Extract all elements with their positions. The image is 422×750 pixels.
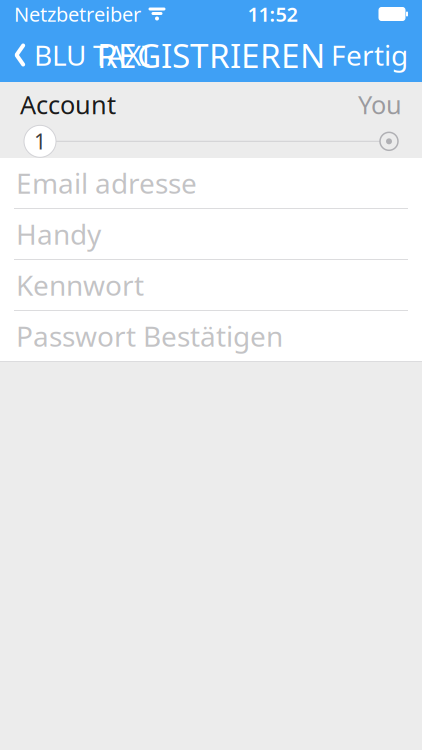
staticText: Account	[20, 88, 116, 121]
button[interactable]: Handy	[0, 209, 422, 259]
button[interactable]	[378, 130, 400, 152]
staticText: 11:52	[247, 1, 297, 27]
staticText: 1	[34, 127, 46, 155]
staticText: Fertig	[331, 36, 408, 74]
staticText: Email adresse	[16, 164, 197, 202]
staticText: Passwort Bestätigen	[16, 317, 283, 355]
button[interactable]: Kennwort	[0, 260, 422, 310]
button[interactable]: Passwort Bestätigen	[0, 311, 422, 361]
staticText: BLU TAXI	[34, 36, 150, 74]
staticText: Handy	[16, 215, 101, 253]
button[interactable]: BLU TAXI	[0, 28, 162, 82]
button[interactable]: Email adresse	[0, 158, 422, 208]
button[interactable]: 1	[22, 123, 58, 159]
staticText: Kennwort	[16, 266, 144, 304]
staticText: REGISTRIEREN	[97, 33, 325, 77]
staticText: Netzbetreiber	[14, 1, 141, 27]
staticText: You	[358, 88, 402, 121]
button[interactable]: Fertig	[317, 28, 422, 82]
